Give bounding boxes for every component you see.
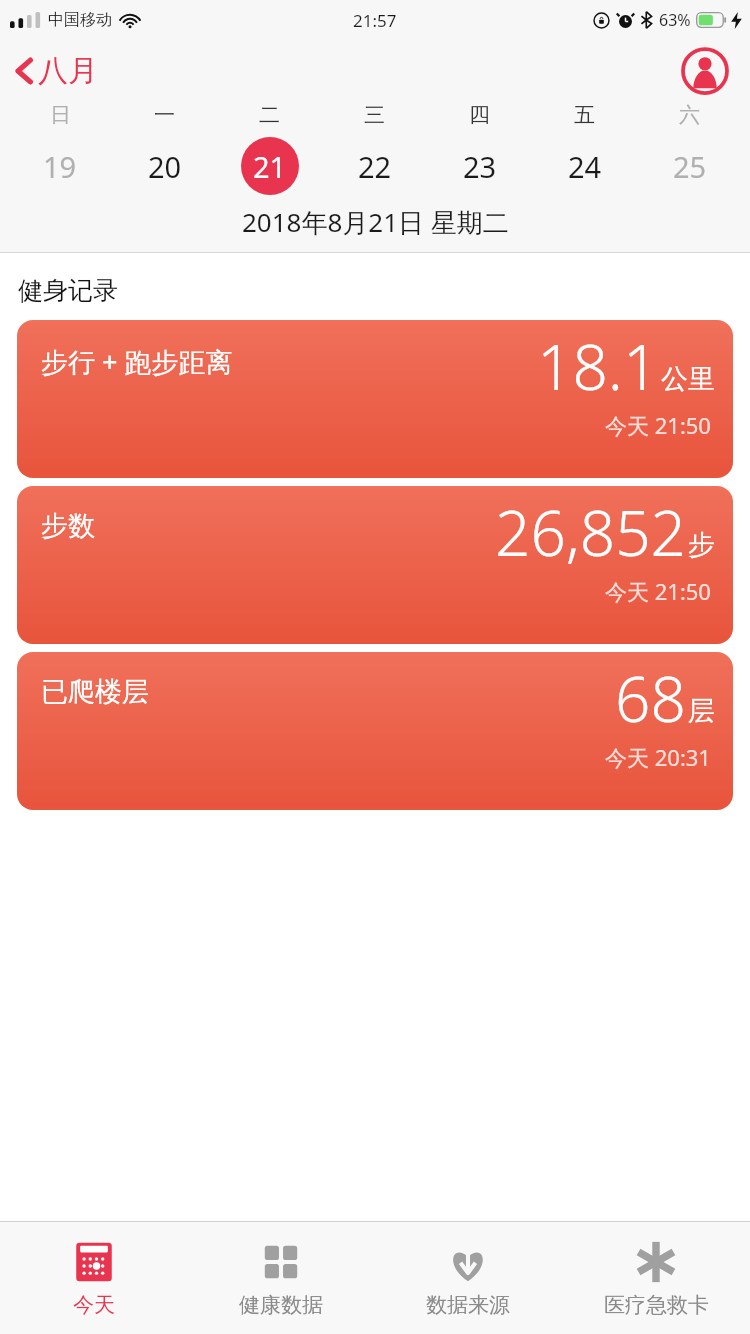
staticText: 健康数据 [239,1292,323,1318]
button[interactable]: 数据来源 [374,1222,562,1334]
button[interactable]: 步行 + 跑步距离 [17,320,733,478]
button[interactable]: 21 [217,134,322,198]
staticText: 层 [688,694,715,728]
staticText: 健身记录 [18,275,118,306]
staticText: 24 [568,147,602,186]
staticText: 今天 20:31 [605,742,711,772]
staticText: 21:57 [353,9,397,32]
button[interactable]: 24 [532,134,637,198]
staticText: 日 [50,102,71,128]
staticText: 今天 [73,1292,115,1318]
button[interactable]: 医疗急救卡 [562,1222,750,1334]
staticText: 六 [679,102,700,128]
staticText: 63% [659,9,691,31]
staticText: 今天 21:50 [605,410,711,440]
button[interactable]: 健康数据 [187,1222,374,1334]
staticText: 三 [364,102,385,128]
staticText: 已爬楼层 [41,675,149,709]
staticText: 19 [43,147,77,186]
staticText: 68 [615,656,686,740]
staticText: 四 [469,102,490,128]
button[interactable]: 25 [637,134,742,198]
staticText: 22 [358,147,392,186]
staticText: 21 [253,147,287,186]
staticText: 步数 [41,509,95,543]
staticText: 二 [259,102,280,128]
staticText: 步行 + 跑步距离 [41,343,233,380]
staticText: 公里 [661,362,715,396]
staticText: 中国移动 [48,10,112,30]
button[interactable]: 八月 [0,48,112,94]
button[interactable]: 今天 [0,1222,187,1334]
staticText: 18.1 [537,324,659,408]
staticText: 医疗急救卡 [604,1292,709,1318]
staticText: 一 [154,102,175,128]
staticText: 23 [463,147,497,186]
button[interactable]: 20 [112,134,217,198]
button[interactable]: 步数 [17,486,733,644]
button[interactable]: 22 [322,134,427,198]
staticText: 20 [148,147,182,186]
staticText: 五 [574,102,595,128]
button[interactable]: 23 [427,134,532,198]
button[interactable]: 已爬楼层 [17,652,733,810]
staticText: 26,852 [495,490,686,574]
staticText: 步 [688,528,715,562]
staticText: 25 [673,147,707,186]
staticText: 数据来源 [426,1292,510,1318]
staticText: 八月 [38,52,98,90]
staticText: 2018年8月21日 星期二 [242,204,509,240]
button[interactable]: 个人资料 [680,46,730,96]
button[interactable]: 19 [8,134,112,198]
staticText: 今天 21:50 [605,576,711,606]
